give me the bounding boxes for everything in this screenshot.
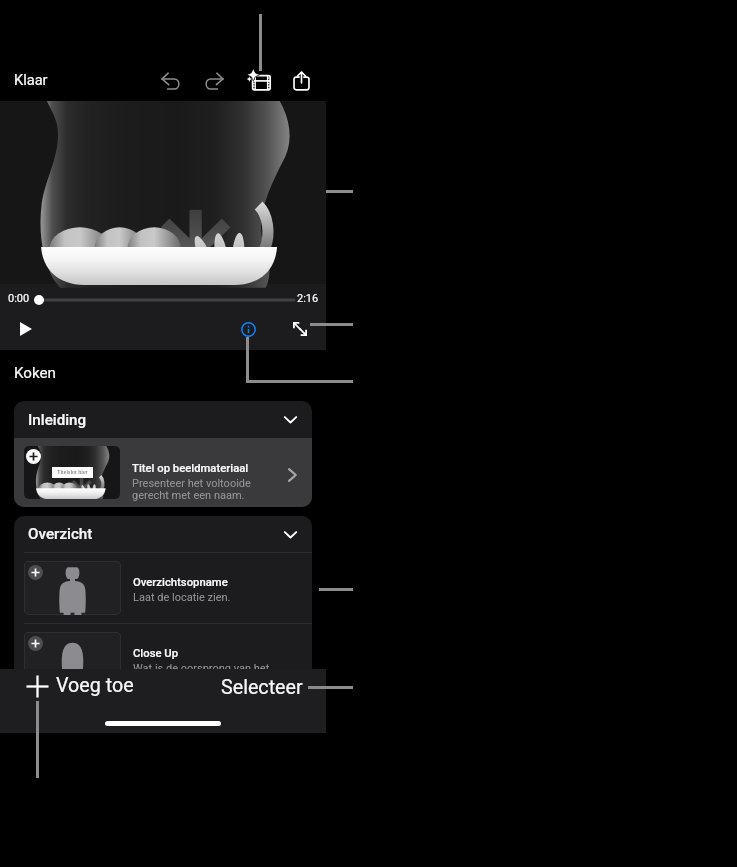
staticText: Klaar xyxy=(14,71,48,88)
staticText: Close Up xyxy=(133,647,179,660)
staticText: Overzichtsopname xyxy=(133,576,228,589)
button[interactable]: Add clip xyxy=(26,449,41,464)
button[interactable]: Klaar xyxy=(6,67,56,92)
button[interactable]: Add clip xyxy=(28,636,43,651)
button[interactable]: Selecteer xyxy=(217,672,307,703)
button[interactable]: Redo xyxy=(200,66,229,95)
staticText: Wat is de oorsprong van het xyxy=(133,662,270,675)
button[interactable]: Inleiding xyxy=(14,401,312,438)
staticText: Presenteer het voltooide gerecht met een… xyxy=(132,477,251,502)
button[interactable]: Share xyxy=(287,66,316,95)
staticText: Titelslot hier xyxy=(57,469,88,476)
button[interactable]: Voeg toe xyxy=(22,671,138,702)
button[interactable]: Play xyxy=(12,315,40,343)
staticText: Voeg toe xyxy=(56,674,134,697)
staticText: 0:00 xyxy=(8,292,30,305)
staticText: Koken xyxy=(14,364,56,382)
staticText: Laat de locatie zien. xyxy=(133,591,231,604)
staticText: Selecteer xyxy=(221,676,303,699)
staticText: Titel op beeldmateriaal xyxy=(132,462,249,475)
button[interactable]: Add clip xyxy=(14,624,312,694)
button[interactable]: Magic movie xyxy=(245,66,274,95)
button[interactable]: Titelslot hier xyxy=(14,438,312,507)
staticText: 2:16 xyxy=(297,292,319,305)
staticText: Overzicht xyxy=(28,525,93,543)
staticText: Inleiding xyxy=(28,411,87,429)
button[interactable]: Info xyxy=(234,315,262,343)
button[interactable]: Add clip xyxy=(14,553,312,623)
button[interactable]: Overzicht xyxy=(14,516,312,552)
button[interactable]: Add clip xyxy=(28,565,43,580)
button[interactable]: Undo xyxy=(156,66,185,95)
button[interactable]: Full screen xyxy=(286,315,314,343)
